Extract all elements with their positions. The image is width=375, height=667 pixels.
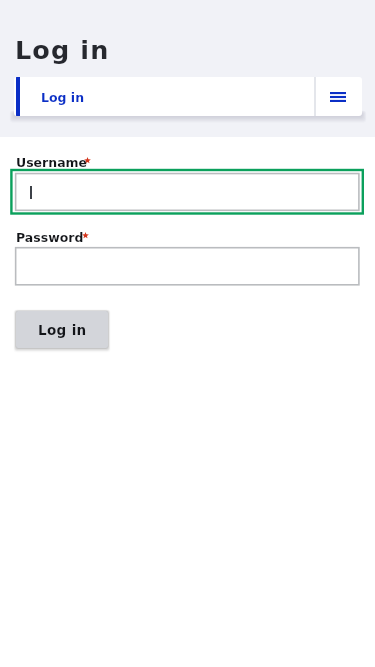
- button[interactable]: Username input field: [11, 169, 365, 215]
- button[interactable]: Menu: [315, 77, 361, 116]
- staticText: Log in: [41, 90, 85, 105]
- button[interactable]: Log in: [16, 311, 108, 348]
- button[interactable]: Password input field: [15, 247, 361, 286]
- staticText: Password: [16, 230, 84, 245]
- staticText: Log in: [38, 322, 87, 338]
- staticText: Log in: [15, 35, 110, 65]
- button[interactable]: Log in: [14, 77, 315, 116]
- staticText: Username: [16, 155, 88, 170]
